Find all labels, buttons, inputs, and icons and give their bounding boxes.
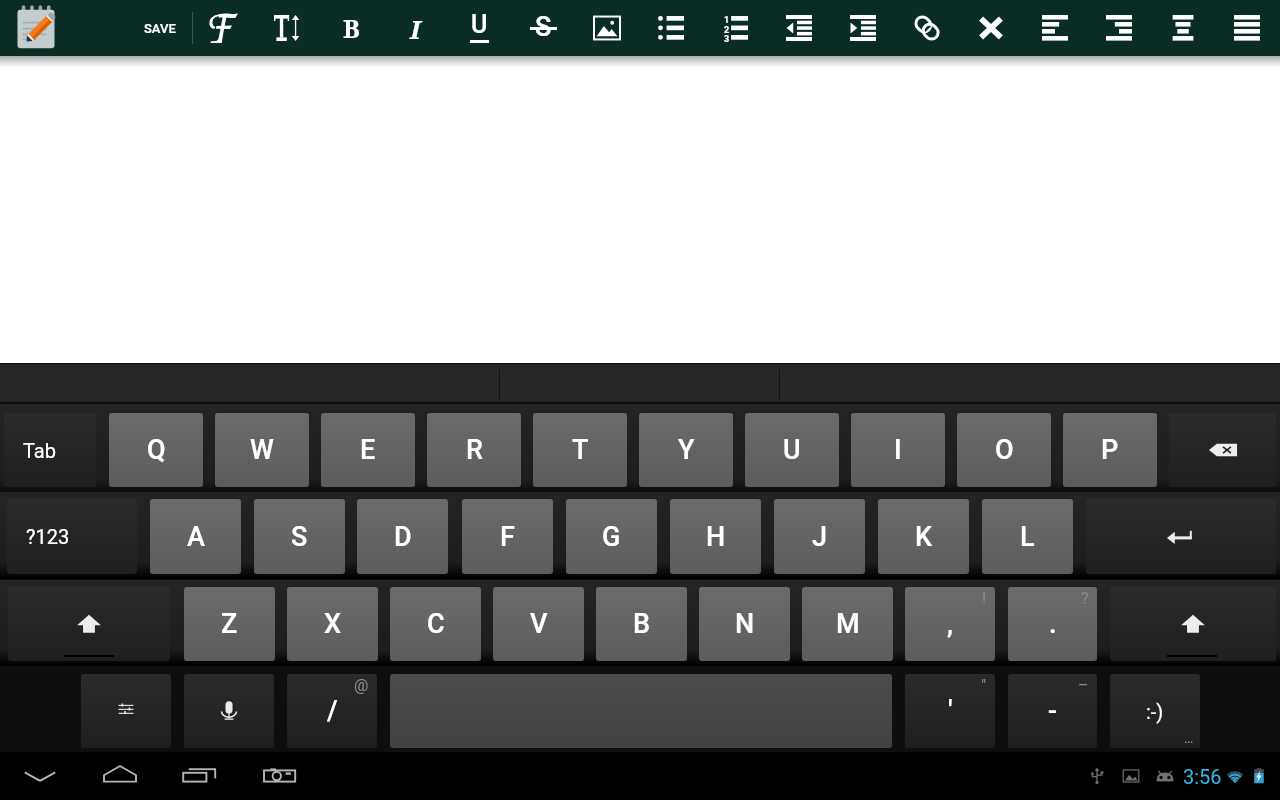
- button[interactable]: shift: [1110, 587, 1276, 661]
- button[interactable]: H: [670, 499, 761, 574]
- button[interactable]: recents: [172, 752, 228, 800]
- button[interactable]: W: [215, 413, 309, 487]
- button[interactable]: ': [905, 674, 995, 748]
- staticText: Q: [147, 434, 166, 466]
- button[interactable]: App icon: [13, 4, 63, 52]
- button[interactable]: G: [566, 499, 657, 574]
- staticText: ': [948, 695, 953, 727]
- button[interactable]: X: [287, 587, 378, 661]
- staticText: L: [1020, 521, 1035, 553]
- button[interactable]: :-): [1110, 674, 1200, 748]
- staticText: /: [327, 695, 338, 727]
- button[interactable]: Outdent: [771, 0, 827, 56]
- button[interactable]: home: [92, 752, 148, 800]
- button[interactable]: V: [493, 587, 584, 661]
- button[interactable]: settings: [81, 674, 171, 748]
- button[interactable]: ,: [905, 587, 995, 661]
- button[interactable]: .: [1008, 587, 1097, 661]
- staticText: D: [394, 521, 412, 553]
- button[interactable]: Z: [184, 587, 275, 661]
- staticText: U: [783, 434, 801, 466]
- button[interactable]: P: [1063, 413, 1157, 487]
- button[interactable]: -: [1008, 674, 1097, 748]
- staticText: SAVE: [144, 21, 176, 36]
- button[interactable]: T: [533, 413, 627, 487]
- button[interactable]: A: [150, 499, 241, 574]
- button[interactable]: Q: [109, 413, 203, 487]
- staticText: F: [500, 521, 515, 553]
- button[interactable]: back: [12, 752, 68, 800]
- button[interactable]: Justify: [1219, 0, 1275, 56]
- staticText: T: [572, 434, 589, 466]
- button[interactable]: D: [357, 499, 448, 574]
- button[interactable]: ?123: [7, 499, 137, 574]
- staticText: ?123: [26, 525, 70, 548]
- staticText: V: [530, 608, 548, 640]
- button[interactable]: Strikethrough: [515, 0, 571, 56]
- button[interactable]: screenshot: [252, 752, 308, 800]
- staticText: !: [982, 589, 987, 608]
- staticText: S: [535, 11, 552, 43]
- staticText: ": [981, 676, 987, 695]
- button[interactable]: J: [774, 499, 865, 574]
- staticText: E: [360, 434, 376, 466]
- staticText: R: [466, 434, 483, 466]
- button[interactable]: U: [745, 413, 839, 487]
- staticText: @: [354, 676, 369, 695]
- button[interactable]: Image: [579, 0, 635, 56]
- button[interactable]: Y: [639, 413, 733, 487]
- button[interactable]: S: [254, 499, 345, 574]
- button[interactable]: L: [982, 499, 1073, 574]
- button[interactable]: AlignRight: [1091, 0, 1147, 56]
- button[interactable]: B: [596, 587, 687, 661]
- staticText: –: [1078, 676, 1089, 695]
- button[interactable]: Link: [899, 0, 955, 56]
- button[interactable]: Bold: [323, 0, 379, 56]
- button[interactable]: I: [851, 413, 945, 487]
- button[interactable]: Italic: [387, 0, 443, 56]
- button[interactable]: backspace: [1169, 413, 1276, 487]
- button[interactable]: shift: [8, 587, 170, 661]
- staticText: ?: [1081, 589, 1089, 608]
- button[interactable]: enter: [1086, 499, 1276, 574]
- button[interactable]: mic: [184, 674, 274, 748]
- button[interactable]: K: [878, 499, 969, 574]
- staticText: .: [1049, 608, 1057, 640]
- staticText: J: [812, 521, 827, 553]
- button[interactable]: O: [957, 413, 1051, 487]
- button[interactable]: AlignCenter: [1155, 0, 1211, 56]
- staticText: Tab: [23, 439, 56, 462]
- button[interactable]: BulletList: [643, 0, 699, 56]
- button[interactable]: AlignLeft: [1027, 0, 1083, 56]
- staticText: O: [995, 434, 1014, 466]
- button[interactable]: Tab: [4, 413, 96, 487]
- button[interactable]: E: [321, 413, 415, 487]
- staticText: I: [894, 434, 902, 466]
- staticText: 3: [722, 34, 731, 45]
- staticText: X: [324, 608, 342, 640]
- staticText: …: [1184, 730, 1194, 746]
- staticText: A: [187, 521, 205, 553]
- staticText: K: [915, 521, 933, 553]
- button[interactable]: M: [802, 587, 893, 661]
- staticText: C: [427, 608, 445, 640]
- button[interactable]: R: [427, 413, 521, 487]
- staticText: S: [291, 521, 308, 553]
- button[interactable]: N: [699, 587, 790, 661]
- button[interactable]: NumberedList: [707, 0, 763, 56]
- button[interactable]: Font: [195, 0, 251, 56]
- button[interactable]: /: [287, 674, 377, 748]
- button[interactable]: F: [462, 499, 553, 574]
- button[interactable]: SAVE: [130, 0, 190, 56]
- button[interactable]: C: [390, 587, 481, 661]
- button[interactable]: TextSize: [259, 0, 315, 56]
- button[interactable]: Underline: [451, 0, 507, 56]
- button[interactable]: Clear: [963, 0, 1019, 56]
- staticText: I: [410, 11, 421, 46]
- staticText: B: [343, 11, 360, 45]
- staticText: P: [1101, 434, 1119, 466]
- button[interactable]: Indent: [835, 0, 891, 56]
- staticText: ,: [947, 608, 953, 640]
- staticText: 1: [722, 15, 731, 26]
